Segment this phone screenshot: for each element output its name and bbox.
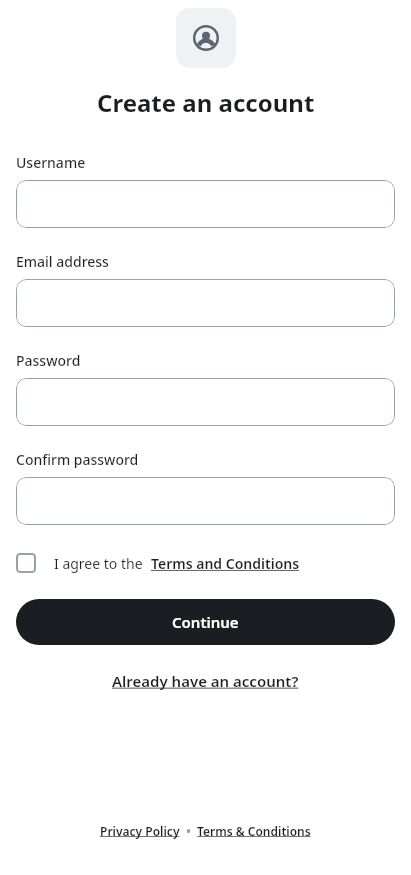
staticText: Email address — [16, 252, 109, 271]
button[interactable]: Terms & Conditions — [197, 823, 311, 839]
button[interactable] — [16, 477, 395, 525]
button[interactable]: Privacy Policy — [100, 823, 180, 839]
other: Account — [176, 8, 236, 68]
button[interactable]: Already have an account? — [112, 671, 299, 691]
button[interactable]: Agree to terms — [16, 553, 395, 573]
button[interactable]: Terms and Conditions — [151, 554, 300, 573]
staticText: Continue — [172, 612, 239, 632]
button[interactable] — [16, 378, 395, 426]
staticText: Username — [16, 153, 86, 172]
button[interactable] — [16, 180, 395, 228]
other: Agree to terms — [16, 553, 36, 573]
button[interactable] — [16, 279, 395, 327]
staticText: Create an account — [97, 86, 315, 119]
staticText: • — [180, 823, 197, 839]
staticText: Password — [16, 351, 81, 370]
staticText: I agree to the — [54, 554, 143, 573]
button[interactable]: Continue — [16, 599, 395, 645]
staticText: Confirm password — [16, 450, 139, 469]
